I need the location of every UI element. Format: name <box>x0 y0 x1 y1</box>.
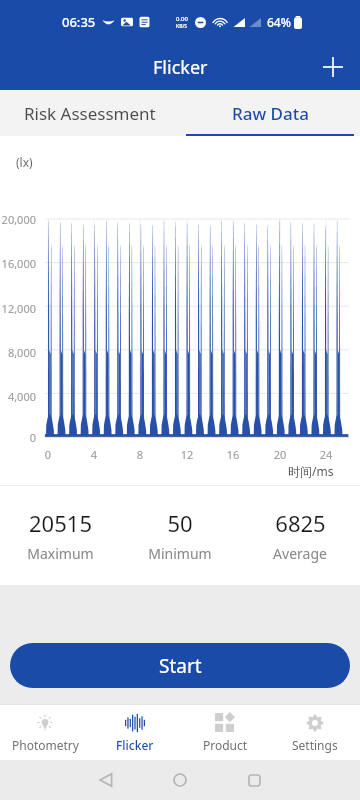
staticText: Maximum <box>27 544 94 563</box>
staticText: 50 <box>167 508 193 538</box>
button[interactable]: Add measurement <box>312 46 354 88</box>
staticText: Flicker <box>153 55 208 80</box>
button[interactable]: 50 <box>120 486 240 585</box>
button[interactable]: Product <box>180 705 270 760</box>
button[interactable]: 20515 <box>0 486 120 585</box>
staticText: 4 <box>85 447 103 462</box>
staticText: Minimum <box>148 544 212 563</box>
staticText: Start <box>159 653 202 679</box>
staticText: 时间/ms <box>288 463 334 479</box>
staticText: Flicker <box>116 737 154 753</box>
staticText: (lx) <box>16 154 33 170</box>
button[interactable]: Photometry <box>0 705 90 760</box>
button[interactable]: Settings <box>270 705 360 760</box>
staticText: 12 <box>178 447 196 462</box>
staticText: 20,000 <box>0 212 36 227</box>
staticText: Product <box>203 737 248 753</box>
button[interactable]: Home <box>158 760 202 800</box>
staticText: 0 <box>0 430 36 445</box>
button[interactable]: Start <box>10 643 350 688</box>
staticText: 12,000 <box>0 301 36 316</box>
staticText: Average <box>273 544 327 563</box>
staticText: Risk Assessment <box>24 102 156 125</box>
button[interactable]: Raw Data <box>180 90 360 136</box>
staticText: 6825 <box>275 508 326 538</box>
button[interactable]: Back <box>84 760 128 800</box>
button[interactable]: Flicker <box>90 705 180 760</box>
staticText: 16,000 <box>0 256 36 271</box>
staticText: 8,000 <box>0 345 36 360</box>
staticText: 0.00 <box>176 15 188 23</box>
staticText: 16 <box>224 447 242 462</box>
staticText: 8 <box>131 447 149 462</box>
button[interactable]: 6825 <box>240 486 360 585</box>
staticText: 4,000 <box>0 389 36 404</box>
staticText: 20 <box>271 447 289 462</box>
button[interactable]: Risk Assessment <box>0 90 180 136</box>
staticText: Settings <box>292 737 338 753</box>
staticText: 06:35 <box>62 13 96 31</box>
staticText: 0 <box>39 447 57 462</box>
staticText: 64% <box>267 14 291 30</box>
staticText: Photometry <box>12 737 79 753</box>
button[interactable]: Recent apps <box>232 760 276 800</box>
staticText: Raw Data <box>232 102 309 125</box>
staticText: 20515 <box>29 508 92 538</box>
staticText: 24 <box>317 447 335 462</box>
staticText: KB/S <box>176 23 188 30</box>
